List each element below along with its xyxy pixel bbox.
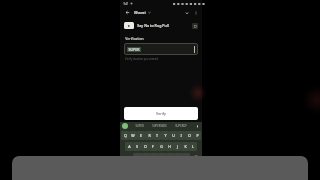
staticText: P (196, 133, 199, 138)
button[interactable] (12, 156, 308, 180)
staticText: Q (124, 133, 127, 138)
button[interactable]: E (137, 131, 145, 140)
button[interactable]: SUPER (135, 124, 144, 128)
staticText: U (172, 133, 175, 138)
button[interactable]: C (150, 153, 158, 162)
button[interactable]: J (173, 142, 181, 151)
button[interactable]: Copy (192, 23, 198, 29)
button[interactable]: I (177, 131, 185, 140)
button[interactable]: Z (133, 153, 142, 162)
button[interactable]: O (185, 131, 193, 140)
button[interactable]: W (129, 131, 137, 140)
button[interactable]: U (169, 131, 177, 140)
staticText: D (144, 144, 147, 149)
button[interactable]: A (125, 142, 133, 151)
button[interactable]: Verify (124, 107, 198, 120)
button[interactable]: N (174, 153, 182, 162)
staticText: F (152, 144, 154, 149)
button[interactable]: Say No to Rug Pull (124, 20, 198, 31)
staticText: N (177, 155, 180, 160)
staticText: C (153, 155, 156, 160)
staticText: M (184, 155, 188, 160)
button[interactable]: Shift (121, 153, 133, 162)
staticText: 9:41 (123, 2, 129, 6)
staticText: J (177, 144, 178, 149)
staticText: Z (136, 155, 139, 160)
staticText: B (169, 155, 172, 160)
staticText: K (184, 144, 187, 149)
button[interactable]: Y (161, 131, 169, 140)
staticText: X (145, 155, 148, 160)
button[interactable]: SUPERSEDE (152, 124, 167, 128)
button[interactable]: X (142, 153, 150, 162)
staticText: S (136, 144, 138, 149)
staticText: Say No to Rug Pull (137, 23, 169, 28)
staticText: W (131, 133, 135, 138)
button[interactable]: SUPER (124, 43, 198, 55)
button[interactable]: G (157, 142, 165, 151)
button[interactable]: K (181, 142, 189, 151)
staticText: SUPER (128, 47, 140, 52)
button[interactable]: S (133, 142, 141, 151)
staticText: Y (164, 133, 167, 138)
staticText: T (156, 133, 158, 138)
button[interactable]: V (158, 153, 166, 162)
staticText: Verification (125, 36, 144, 41)
staticText: Verify location you viewed (125, 57, 158, 61)
button[interactable]: Backspace (190, 153, 201, 162)
button[interactable]: SUPEROF (175, 124, 187, 128)
button[interactable]: D (141, 142, 149, 151)
staticText: O (188, 133, 191, 138)
button[interactable]: Expand (183, 9, 190, 16)
staticText: L (192, 144, 194, 149)
button[interactable]: Google (122, 123, 128, 129)
staticText: E (140, 133, 142, 138)
button[interactable]: L (189, 142, 197, 151)
button[interactable]: H (165, 142, 173, 151)
button[interactable]: P (193, 131, 201, 140)
button[interactable]: F (149, 142, 157, 151)
staticText: V (161, 155, 164, 160)
button[interactable]: T (153, 131, 161, 140)
staticText: A (128, 144, 131, 149)
staticText: Bharat (134, 10, 146, 15)
button[interactable]: Voice input (195, 124, 200, 129)
button[interactable]: More options (192, 9, 199, 16)
button[interactable]: M (182, 153, 190, 162)
button[interactable]: B (166, 153, 174, 162)
staticText: R (148, 133, 151, 138)
button[interactable]: Q (121, 131, 129, 140)
staticText: I (180, 133, 182, 138)
button[interactable]: Back (123, 8, 131, 16)
staticText: G (160, 144, 163, 149)
button[interactable]: R (145, 131, 153, 140)
staticText: H (168, 144, 171, 149)
staticText: Verify (156, 111, 166, 116)
